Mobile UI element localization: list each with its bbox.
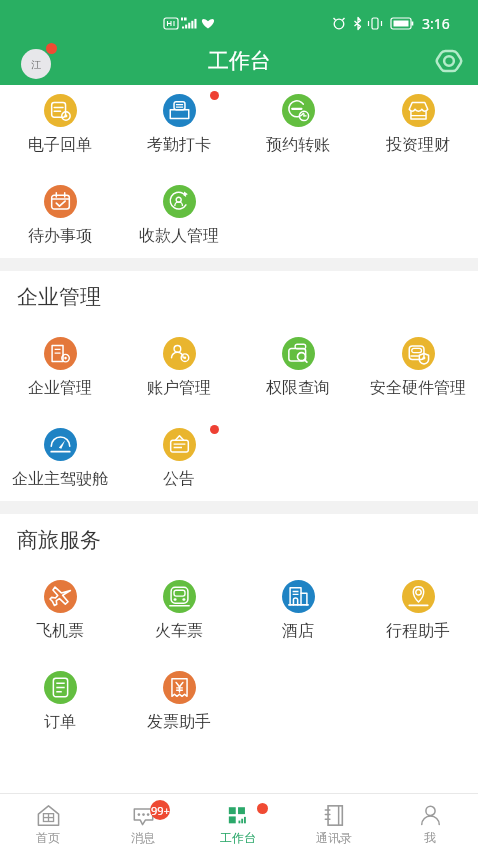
staticText: 订单 <box>44 712 76 732</box>
staticText: 工作台 <box>208 48 271 74</box>
button[interactable]: 飞机票 <box>0 571 119 662</box>
button[interactable]: 投资理财 <box>358 85 478 176</box>
staticText: 飞机票 <box>36 621 84 641</box>
staticText: 酒店 <box>282 621 314 641</box>
button[interactable]: 酒店 <box>238 571 358 662</box>
staticText: 首页 <box>36 830 60 845</box>
staticText: 电子回单 <box>28 135 92 155</box>
button[interactable]: Scan <box>432 44 466 78</box>
staticText: 发票助手 <box>147 712 211 732</box>
button[interactable]: 电子回单 <box>0 85 119 176</box>
staticText: 企业主驾驶舱 <box>12 469 108 489</box>
staticText: 待办事项 <box>28 226 92 246</box>
staticText: 消息 <box>131 830 155 845</box>
staticText: 公告 <box>163 469 195 489</box>
staticText: 安全硬件管理 <box>370 378 466 398</box>
staticText: 账户管理 <box>147 378 211 398</box>
button[interactable]: 我 <box>382 794 478 850</box>
button[interactable]: 收款人管理 <box>119 176 238 258</box>
staticText: 我 <box>424 830 436 845</box>
button[interactable]: 工作台 <box>190 794 286 850</box>
staticText: 投资理财 <box>386 135 450 155</box>
button[interactable]: 企业主驾驶舱 <box>0 419 119 501</box>
button[interactable]: 待办事项 <box>0 176 119 258</box>
button[interactable]: 通讯录 <box>286 794 382 850</box>
staticText: 预约转账 <box>266 135 330 155</box>
button[interactable]: 火车票 <box>119 571 238 662</box>
staticText: 99+ <box>151 803 170 818</box>
staticText: 行程助手 <box>386 621 450 641</box>
button[interactable]: 预约转账 <box>238 85 358 176</box>
staticText: 通讯录 <box>316 830 352 845</box>
button[interactable]: 公告 <box>119 419 238 501</box>
button[interactable]: 账户管理 <box>119 328 238 419</box>
staticText: 企业管理 <box>17 284 101 310</box>
staticText: 考勤打卡 <box>147 135 211 155</box>
button[interactable]: 权限查询 <box>238 328 358 419</box>
button[interactable]: Profile <box>21 43 57 79</box>
staticText: 江 <box>31 58 41 71</box>
staticText: 火车票 <box>155 621 203 641</box>
button[interactable]: 行程助手 <box>358 571 478 662</box>
button[interactable]: 安全硬件管理 <box>358 328 478 419</box>
staticText: 商旅服务 <box>17 527 101 553</box>
button[interactable]: 99+ <box>95 794 190 850</box>
staticText: 工作台 <box>220 830 256 845</box>
staticText: 3:16 <box>422 14 450 33</box>
button[interactable]: 考勤打卡 <box>119 85 238 176</box>
staticText: 收款人管理 <box>139 226 219 246</box>
staticText: 权限查询 <box>266 378 330 398</box>
staticText: 企业管理 <box>28 378 92 398</box>
button[interactable]: 发票助手 <box>119 662 238 744</box>
button[interactable]: 首页 <box>0 794 95 850</box>
button[interactable]: 订单 <box>0 662 119 744</box>
button[interactable]: 企业管理 <box>0 328 119 419</box>
